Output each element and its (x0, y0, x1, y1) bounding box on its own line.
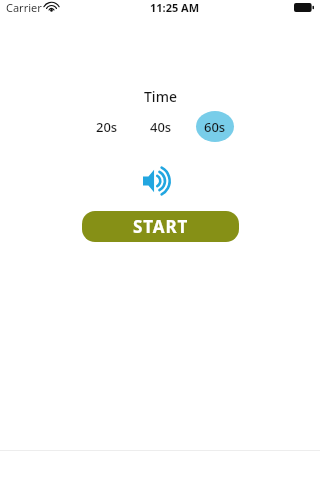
staticText: 60s (204, 118, 226, 136)
button[interactable]: 40s (142, 110, 180, 143)
staticText: START (133, 215, 189, 238)
button[interactable]: 60s (196, 110, 234, 143)
staticText: 40s (150, 118, 172, 136)
button[interactable]: START (82, 211, 239, 242)
staticText: 20s (96, 118, 118, 136)
staticText: 11:25 AM (150, 0, 200, 15)
staticText: Time (144, 87, 177, 106)
button[interactable]: 20s (88, 110, 126, 143)
button[interactable]: Sound on (139, 165, 181, 197)
staticText: Carrier (6, 0, 42, 15)
